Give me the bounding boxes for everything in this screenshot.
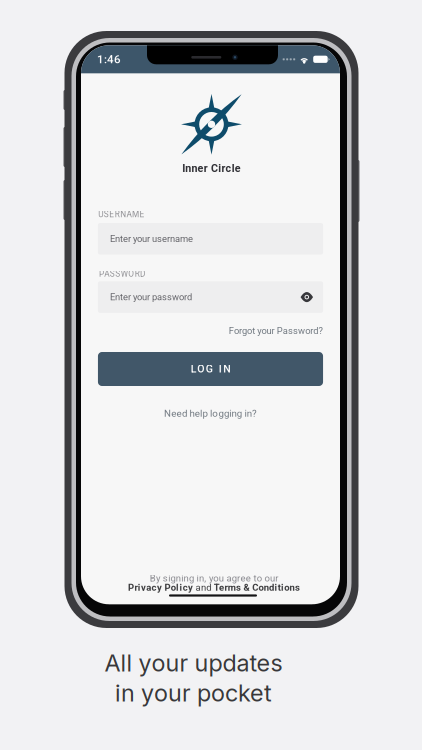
staticText: Privacy Policy and Terms & Conditions xyxy=(128,582,300,593)
staticText: All your updates xyxy=(104,649,282,677)
staticText: USERNAME xyxy=(98,210,144,219)
button[interactable]: Privacy Policy and Terms & Conditions xyxy=(128,582,300,593)
staticText: LOG IN xyxy=(191,363,230,375)
button[interactable]: LOG IN xyxy=(98,352,323,386)
button[interactable]: Need help logging in? xyxy=(164,406,257,421)
staticText: 1:46 xyxy=(97,53,121,66)
button[interactable]: Forgot your Password? xyxy=(229,323,322,338)
staticText: By signing in, you agree to our xyxy=(150,573,278,584)
staticText: Enter your username xyxy=(110,233,193,244)
staticText: PASSWORD xyxy=(99,269,145,279)
staticText: Enter your password xyxy=(110,292,192,302)
staticText: Need help logging in? xyxy=(164,408,257,419)
staticText: in your pocket xyxy=(115,679,272,707)
staticText: Forgot your Password? xyxy=(229,325,322,336)
staticText: Inner Circle xyxy=(182,162,241,174)
